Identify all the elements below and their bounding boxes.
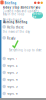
button[interactable]: Topic 2 [0,62,46,69]
staticText: Briefing [4,1,16,5]
staticText: Stay in the loop [2,12,24,16]
staticText: Curated news and updates [2,9,38,13]
staticText: the news of the day [2,30,29,33]
staticText: Subscribe [32,12,42,19]
staticText: Topic 2 [7,64,18,67]
staticText: Topic 6 [7,92,18,95]
staticText: Hello there [7,26,24,29]
button[interactable]: Topic 5 [0,83,46,90]
staticText: Ready [7,37,15,40]
staticText: Topic 3 [7,71,18,74]
button[interactable]: Topic 1 [0,55,46,62]
staticText: Today's top stories for you [2,6,40,9]
staticText: Topic 4 [7,78,18,81]
button[interactable]: Topic 4 [0,76,46,83]
staticText: Topic 5 [7,85,18,88]
staticText: Everything is up to date [9,48,42,52]
button[interactable]: Topic 6 [0,90,46,97]
button[interactable]: Topic 3 [0,69,46,76]
staticText: Topic 1 [7,57,18,60]
staticText: Morning Briefing [2,20,27,24]
staticText: Weekly digest [2,18,21,21]
button[interactable]: Subscribe [32,12,43,18]
